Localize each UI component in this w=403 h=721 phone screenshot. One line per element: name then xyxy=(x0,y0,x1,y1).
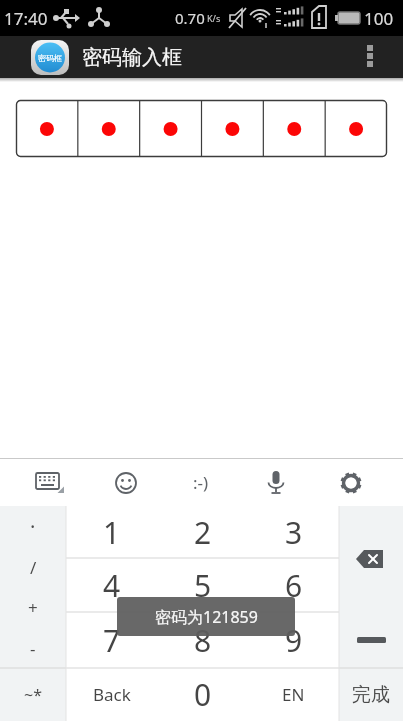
staticText: 2 xyxy=(194,512,212,553)
button[interactable] xyxy=(329,459,373,506)
staticText: 100 xyxy=(364,7,394,30)
button[interactable] xyxy=(254,459,298,506)
button[interactable]: 3 xyxy=(248,506,339,558)
button[interactable] xyxy=(28,459,72,506)
button[interactable]: 6 xyxy=(248,558,339,612)
button[interactable] xyxy=(339,506,403,612)
staticText: 7 xyxy=(103,620,121,661)
staticText: :-) xyxy=(193,471,209,494)
button[interactable]: / xyxy=(0,547,66,587)
button[interactable]: 8 xyxy=(157,612,248,668)
button[interactable]: ~* xyxy=(0,668,66,721)
staticText: + xyxy=(28,596,38,619)
staticText: 0.70 xyxy=(175,8,205,28)
staticText: 完成 xyxy=(352,683,390,707)
staticText: Back xyxy=(93,683,131,706)
staticText: 9 xyxy=(285,620,303,661)
staticText: 6 xyxy=(285,565,303,606)
staticText: 3 xyxy=(285,512,303,553)
button[interactable]: 0 xyxy=(157,668,248,721)
staticText: 17:40 xyxy=(4,7,48,30)
button[interactable] xyxy=(339,612,403,668)
staticText: 密码框 xyxy=(38,53,62,63)
staticText: 5 xyxy=(194,565,212,606)
button[interactable]: 4 xyxy=(66,558,157,612)
button[interactable]: 完成 xyxy=(339,668,403,721)
staticText: ~* xyxy=(24,684,42,706)
button[interactable]: EN xyxy=(248,668,339,721)
button[interactable]: 7 xyxy=(66,612,157,668)
button[interactable]: 9 xyxy=(248,612,339,668)
staticText: 0 xyxy=(194,674,212,715)
button[interactable]: 1 xyxy=(66,506,157,558)
button[interactable]: - xyxy=(0,628,66,668)
staticText: EN xyxy=(282,683,305,706)
button[interactable] xyxy=(352,36,388,78)
staticText: 密码输入框 xyxy=(82,45,182,70)
button[interactable]: 5 xyxy=(157,558,248,612)
staticText: K/s xyxy=(207,12,221,24)
staticText: 4 xyxy=(103,565,121,606)
staticText: 1 xyxy=(103,512,121,553)
staticText: · xyxy=(30,513,36,540)
button[interactable]: :-) xyxy=(179,459,223,506)
button[interactable] xyxy=(16,100,387,157)
button[interactable] xyxy=(104,459,148,506)
staticText: / xyxy=(30,556,37,579)
button[interactable]: + xyxy=(0,587,66,627)
staticText: 8 xyxy=(194,620,212,661)
button[interactable]: Back xyxy=(66,668,157,721)
staticText: 密码为121859 xyxy=(155,606,258,628)
button[interactable]: 2 xyxy=(157,506,248,558)
staticText: - xyxy=(30,637,36,660)
button[interactable]: · xyxy=(0,506,66,546)
